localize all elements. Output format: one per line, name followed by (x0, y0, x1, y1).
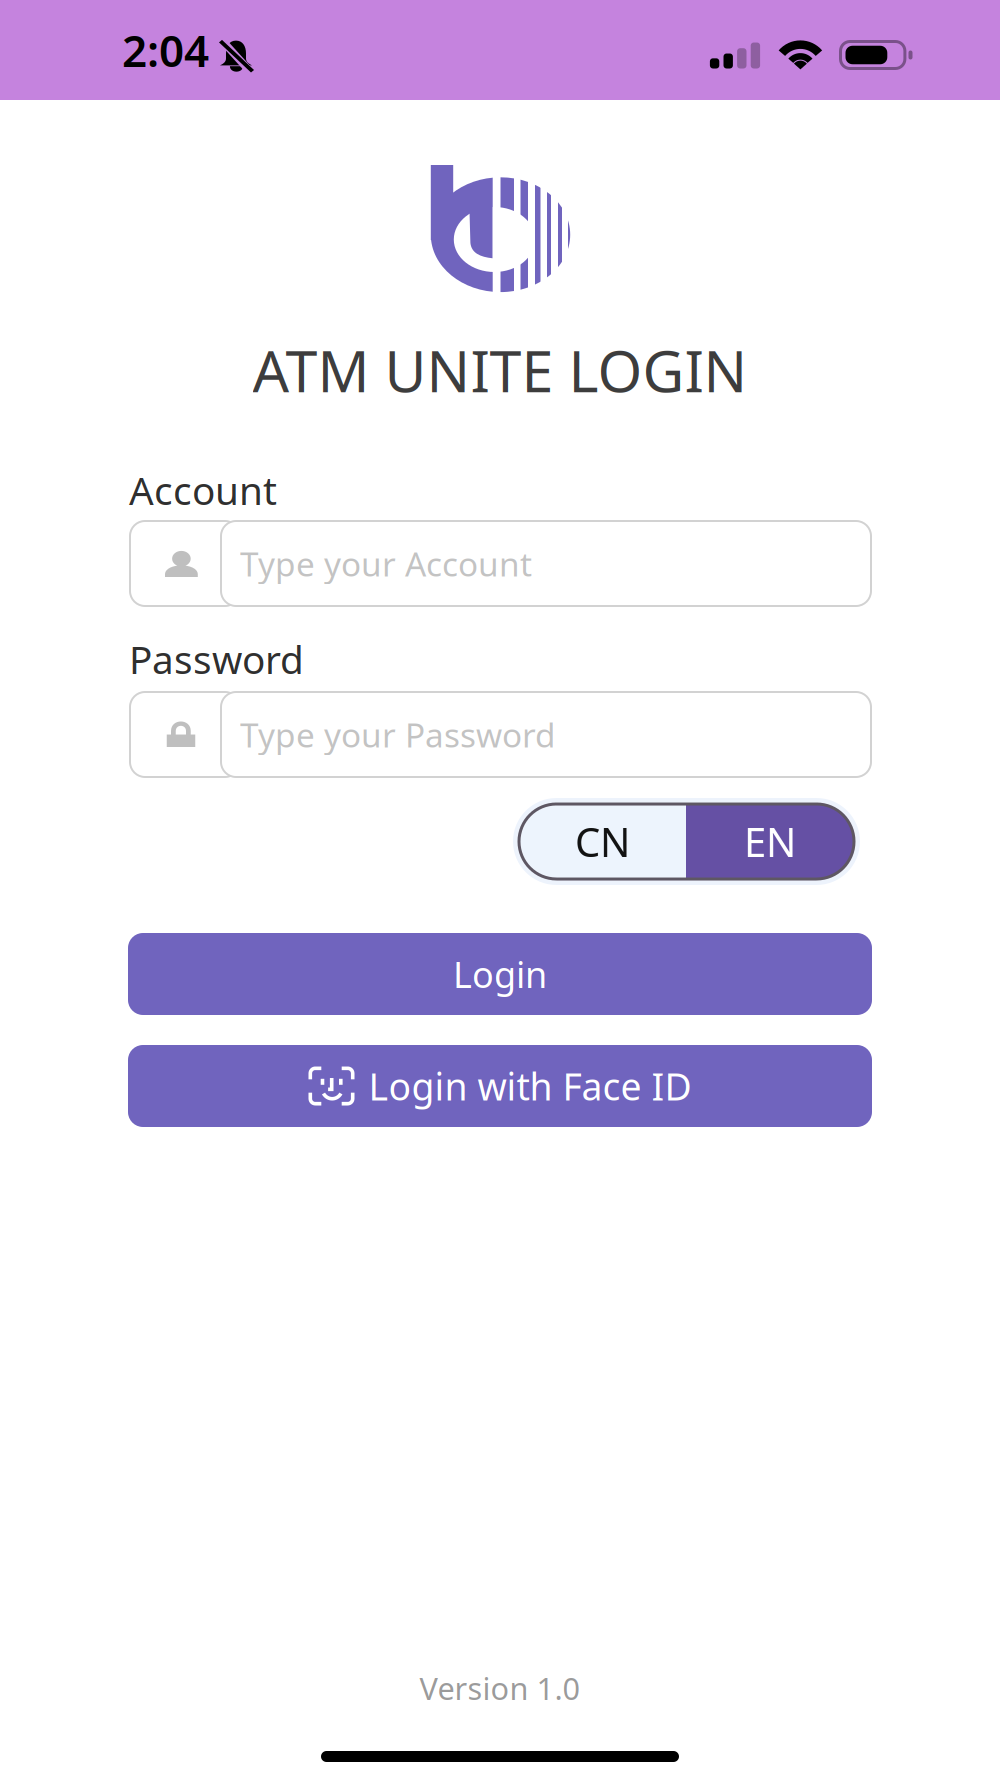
staticText: EN (744, 815, 796, 868)
staticText: Account (129, 464, 277, 516)
staticText: Type your Password (240, 712, 556, 757)
button[interactable]: CN (519, 804, 686, 879)
staticText: Version 1.0 (419, 1668, 580, 1708)
button[interactable]: Login with Face ID (128, 1045, 872, 1127)
staticText: Type your Account (240, 541, 532, 586)
staticText: CN (575, 815, 630, 868)
staticText: 2:04 (122, 21, 209, 79)
staticText: Password (129, 633, 304, 685)
staticText: Login (453, 950, 547, 998)
staticText: ATM UNITE LOGIN (252, 332, 747, 408)
staticText: Login with Face ID (368, 1061, 691, 1111)
button[interactable]: EN (686, 804, 854, 879)
button[interactable]: Login (128, 933, 872, 1015)
